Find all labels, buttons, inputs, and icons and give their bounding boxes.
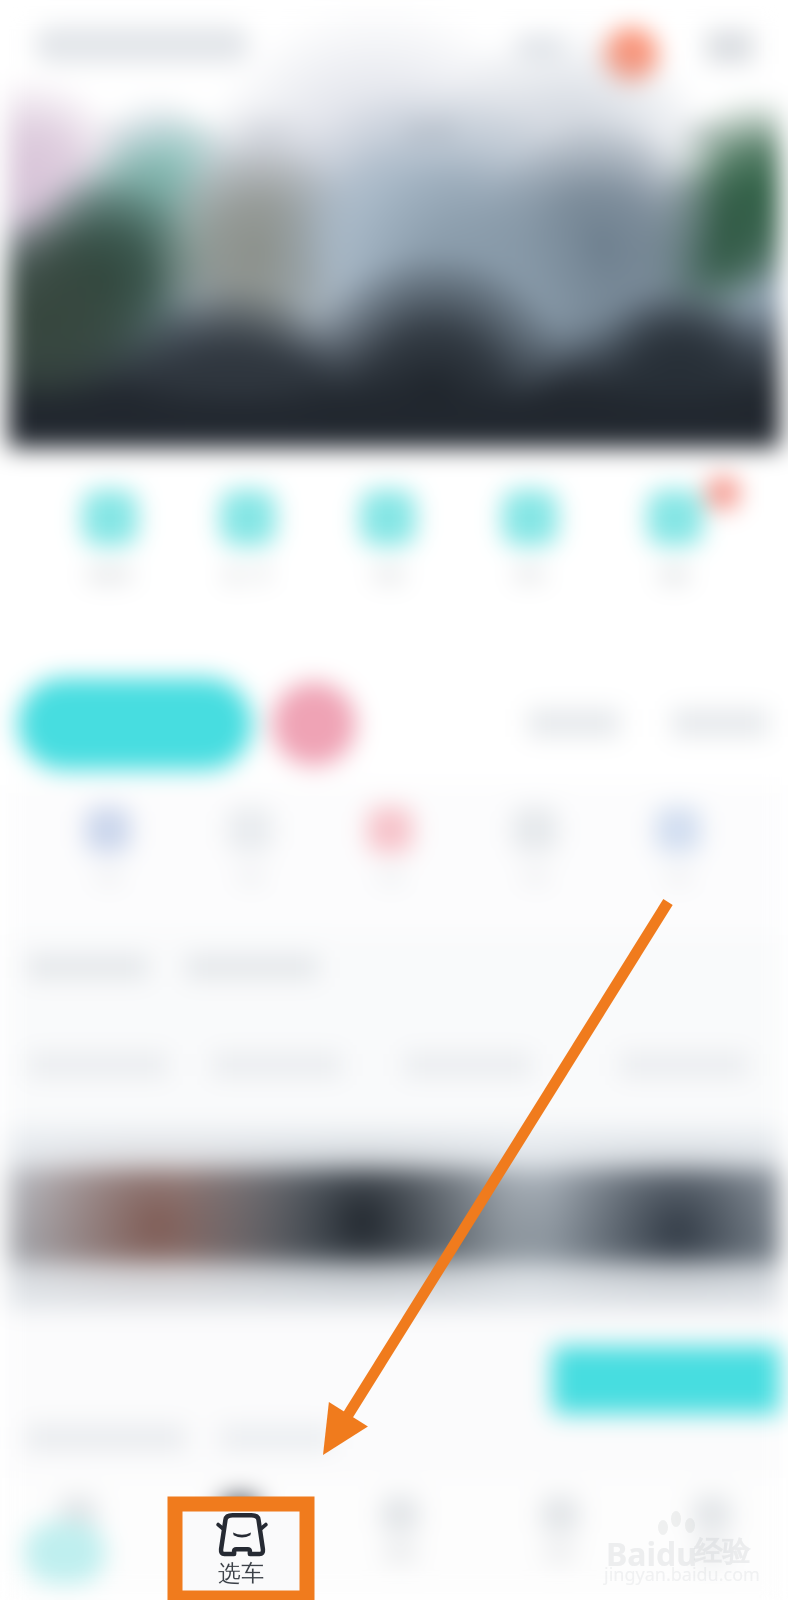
staticText: 精选 [250, 121, 290, 146]
button[interactable]: Camera [516, 34, 562, 58]
button[interactable] [552, 1346, 788, 1414]
button[interactable]: 买新车 [55, 490, 165, 606]
button[interactable]: 发现 [340, 1496, 460, 1590]
button[interactable]: 关注 [80, 108, 160, 158]
button[interactable]: 选车 [175, 1504, 307, 1598]
button[interactable]: Hot [272, 682, 356, 766]
button[interactable]: 车型 [480, 807, 590, 923]
button[interactable]: 车型 [335, 807, 445, 923]
staticText: 经验 [694, 1534, 750, 1569]
button[interactable]: 更多 [620, 490, 730, 606]
button[interactable]: 我的 [652, 1496, 772, 1590]
button[interactable]: 卖二手 [193, 490, 303, 606]
staticText: Baidu [606, 1532, 698, 1576]
button[interactable]: 车型 [623, 807, 733, 923]
staticText: 我的 [696, 1544, 728, 1564]
button[interactable]: 养车 [475, 490, 585, 606]
staticText: 视频 [560, 121, 600, 146]
button[interactable]: 车型 [53, 807, 163, 923]
button[interactable] [34, 26, 250, 64]
button[interactable] [672, 709, 768, 737]
button[interactable]: Profile [706, 30, 754, 64]
button[interactable]: 精选 [230, 108, 310, 158]
button[interactable]: 车型 [195, 807, 305, 923]
button[interactable]: 选车 [390, 108, 470, 158]
button[interactable] [528, 709, 620, 737]
staticText: 选车 [218, 1559, 264, 1588]
button[interactable]: 直播 [660, 108, 740, 158]
staticText: 选车 [404, 117, 456, 150]
button[interactable]: 首页 [18, 1496, 138, 1590]
button[interactable]: 车贷 [333, 490, 443, 606]
staticText: jingyan.baidu.com [604, 1562, 760, 1587]
staticText: 直播 [680, 121, 720, 146]
button[interactable]: 社区 [500, 1496, 620, 1590]
staticText: 首页 [62, 1544, 94, 1564]
button[interactable]: 选车 [180, 1496, 300, 1590]
button[interactable]: Messages [604, 28, 658, 82]
staticText: 关注 [100, 121, 140, 146]
button[interactable] [18, 678, 252, 770]
staticText: 选车 [224, 1544, 256, 1564]
button[interactable]: 视频 [540, 108, 620, 158]
